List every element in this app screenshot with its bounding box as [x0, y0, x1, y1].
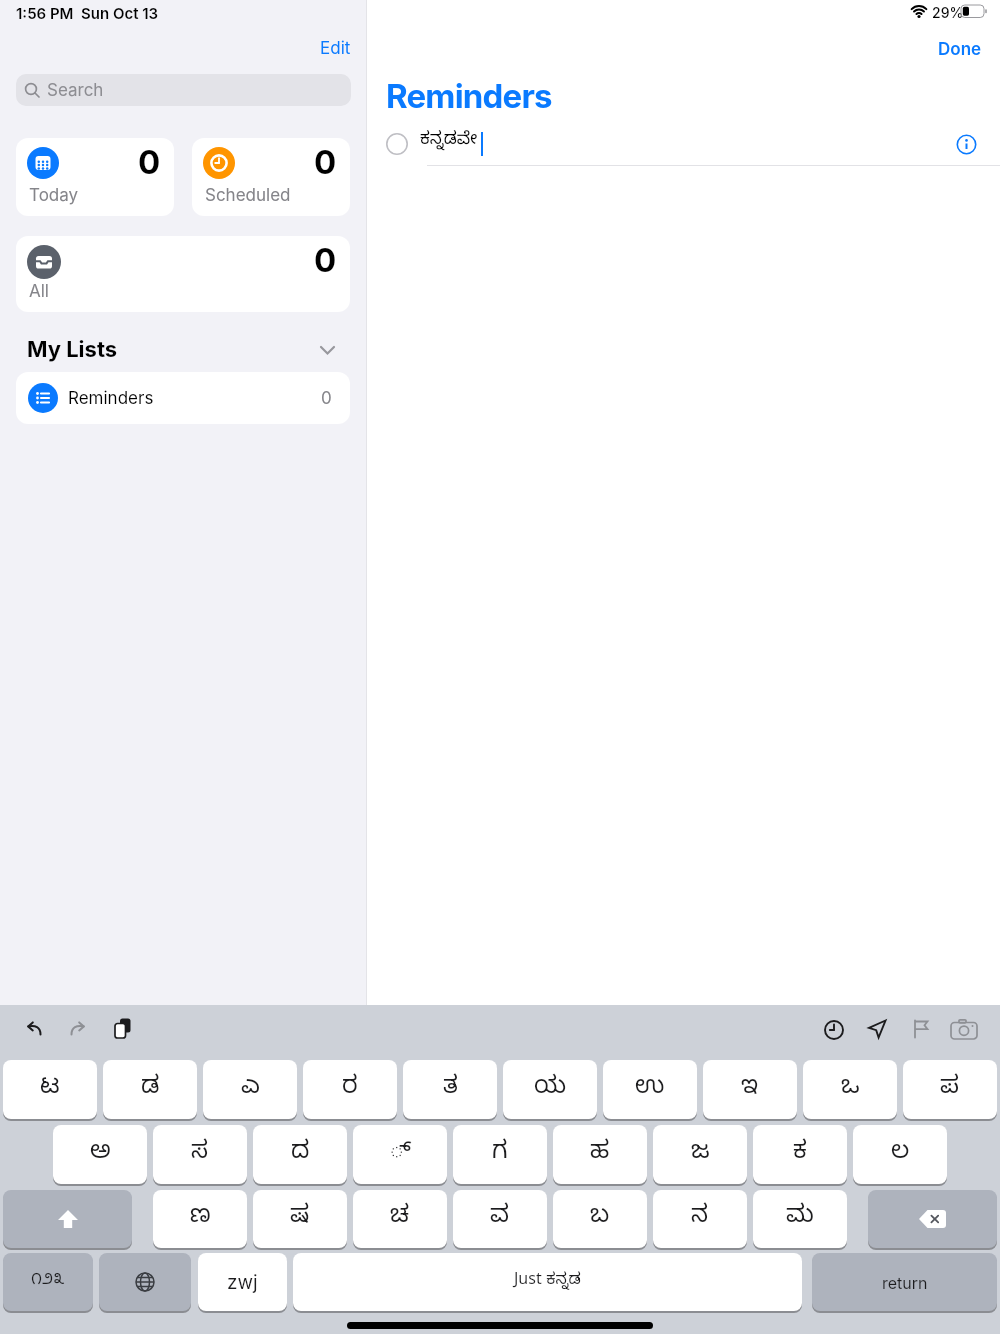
button[interactable]: ಷ	[253, 1190, 347, 1248]
button[interactable]: return	[812, 1253, 997, 1311]
staticText: ಉ	[635, 1074, 665, 1106]
staticText: ನ	[691, 1203, 709, 1235]
staticText: ಎ	[241, 1074, 260, 1106]
button[interactable]: ಜ	[653, 1125, 747, 1184]
staticText: ರ	[342, 1074, 358, 1106]
button[interactable]: ತ	[403, 1060, 497, 1119]
button[interactable]	[67, 1020, 88, 1038]
staticText: Reminders	[386, 76, 552, 116]
button[interactable]: ಯ	[503, 1060, 597, 1119]
button[interactable]: ರ	[303, 1060, 397, 1119]
staticText: ಯ	[534, 1074, 567, 1106]
staticText: ಸ	[191, 1139, 209, 1171]
button[interactable]	[99, 1253, 191, 1311]
staticText: ೧೨೩	[31, 1271, 65, 1293]
button[interactable]: ಡ	[103, 1060, 197, 1119]
button[interactable]: ಇ	[703, 1060, 797, 1119]
button[interactable]	[386, 130, 986, 160]
button[interactable]: Done	[938, 39, 982, 60]
staticText: ಬ	[590, 1203, 610, 1235]
staticText: ವ	[490, 1203, 510, 1235]
button[interactable]: ಸ	[153, 1125, 247, 1184]
button[interactable]	[320, 346, 335, 355]
staticText: ಚ	[390, 1203, 410, 1235]
staticText: 29%	[932, 4, 964, 21]
staticText: Just ಕನ್ನಡ	[514, 1271, 581, 1293]
staticText: 0	[321, 388, 332, 409]
button[interactable]: Edit	[320, 38, 351, 59]
button[interactable]: Reminders	[16, 372, 350, 424]
button[interactable]	[950, 1019, 978, 1040]
button[interactable]: ಲ	[853, 1125, 947, 1184]
button[interactable]: ಅ	[53, 1125, 147, 1184]
button[interactable]: Search	[16, 74, 351, 106]
button[interactable]: ಎ	[203, 1060, 297, 1119]
staticText: ಕನ್ನಡವೇ	[420, 130, 478, 153]
staticText: ಷ	[290, 1203, 310, 1235]
button[interactable]: ಮ	[753, 1190, 847, 1248]
staticText: All	[29, 281, 49, 302]
button[interactable]: ಕ	[753, 1125, 847, 1184]
staticText: return	[882, 1273, 928, 1292]
staticText: ಜ	[691, 1139, 710, 1171]
staticText: ಅ	[90, 1139, 111, 1171]
button[interactable]	[956, 134, 977, 155]
staticText: zwj	[227, 1271, 258, 1294]
staticText: ಣ	[190, 1203, 211, 1235]
button[interactable]	[24, 1020, 45, 1038]
button[interactable]: ಗ	[453, 1125, 547, 1184]
button[interactable]: ಣ	[153, 1190, 247, 1248]
button[interactable]	[911, 1018, 932, 1039]
staticText: ಗ	[492, 1139, 508, 1171]
button[interactable]: ಟ	[3, 1060, 97, 1119]
button[interactable]	[868, 1190, 997, 1248]
button[interactable]: ಒ	[803, 1060, 897, 1119]
staticText: ಲ	[891, 1139, 910, 1171]
button[interactable]: 0	[192, 138, 350, 216]
button[interactable]: ಹ	[553, 1125, 647, 1184]
staticText: My Lists	[27, 336, 118, 363]
staticText: Search	[47, 80, 104, 101]
button[interactable]: ೧೨೩	[3, 1253, 93, 1311]
staticText: 0	[138, 142, 161, 182]
button[interactable]: Just ಕನ್ನಡ	[293, 1253, 802, 1311]
button[interactable]	[866, 1018, 889, 1041]
staticText: ದ	[291, 1139, 310, 1171]
button[interactable]: 0	[16, 236, 350, 312]
button[interactable]: ನ	[653, 1190, 747, 1248]
staticText: Today	[29, 185, 79, 206]
staticText: ಹ	[590, 1139, 610, 1171]
button[interactable]	[3, 1190, 132, 1248]
staticText: 0	[314, 240, 337, 280]
button[interactable]: zwj	[198, 1253, 287, 1311]
staticText: ಡ	[141, 1074, 160, 1106]
button[interactable]: ಉ	[603, 1060, 697, 1119]
button[interactable]: ದ	[253, 1125, 347, 1184]
button[interactable]: ್	[353, 1125, 447, 1184]
staticText: ತ	[443, 1074, 458, 1106]
staticText: ಮ	[786, 1203, 814, 1235]
staticText: 1:56 PM Sun Oct 13	[16, 4, 159, 22]
button[interactable]: 0	[16, 138, 174, 216]
staticText: Reminders	[68, 388, 154, 409]
button[interactable]	[823, 1019, 845, 1041]
staticText: ಟ	[40, 1074, 60, 1106]
staticText: ್	[390, 1139, 411, 1171]
button[interactable]: ವ	[453, 1190, 547, 1248]
staticText: ಕ	[793, 1139, 807, 1171]
staticText: Scheduled	[205, 185, 291, 206]
button[interactable]	[111, 1018, 133, 1040]
staticText: 0	[314, 142, 337, 182]
button[interactable]: ಚ	[353, 1190, 447, 1248]
staticText: ಇ	[741, 1074, 759, 1106]
button[interactable]: ಬ	[553, 1190, 647, 1248]
staticText: ಒ	[841, 1074, 860, 1106]
button[interactable]: ಪ	[903, 1060, 997, 1119]
staticText: ಪ	[940, 1074, 960, 1106]
